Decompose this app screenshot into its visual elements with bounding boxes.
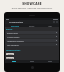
staticText: Overview [11, 25, 19, 27]
staticText: Details [29, 25, 35, 27]
staticText: Sync frequency [7, 44, 20, 46]
button[interactable]: Home [5, 60, 23, 63]
button[interactable]: Details [23, 24, 41, 27]
staticText: Diagnostics [6, 57, 14, 59]
button[interactable]: Sync frequency [6, 43, 58, 46]
button[interactable]: Profile [41, 60, 59, 63]
staticText: Logs [48, 25, 52, 27]
staticText: Account linking [7, 36, 20, 38]
staticText: Configuration [9, 21, 53, 24]
button[interactable]: Display name [6, 31, 58, 34]
button[interactable]: Items [23, 60, 41, 63]
staticText: BUILD PREVIEW · DETAILED CONFIGURATION [0, 7, 64, 10]
staticText: Export [8, 53, 13, 55]
staticText: Advanced options [6, 49, 21, 51]
button[interactable]: Overview [5, 24, 23, 27]
staticText: Display name [7, 32, 18, 34]
staticText: SHOWCASE [0, 2, 64, 6]
button[interactable]: Export [6, 52, 58, 55]
button[interactable]: Logs [41, 24, 59, 27]
button[interactable]: Account linking [6, 35, 58, 38]
button[interactable]: Diagnostics [6, 56, 58, 59]
button[interactable]: Notification channels [6, 39, 58, 42]
staticText: General [6, 28, 13, 30]
staticText: Notification channels [7, 40, 24, 42]
